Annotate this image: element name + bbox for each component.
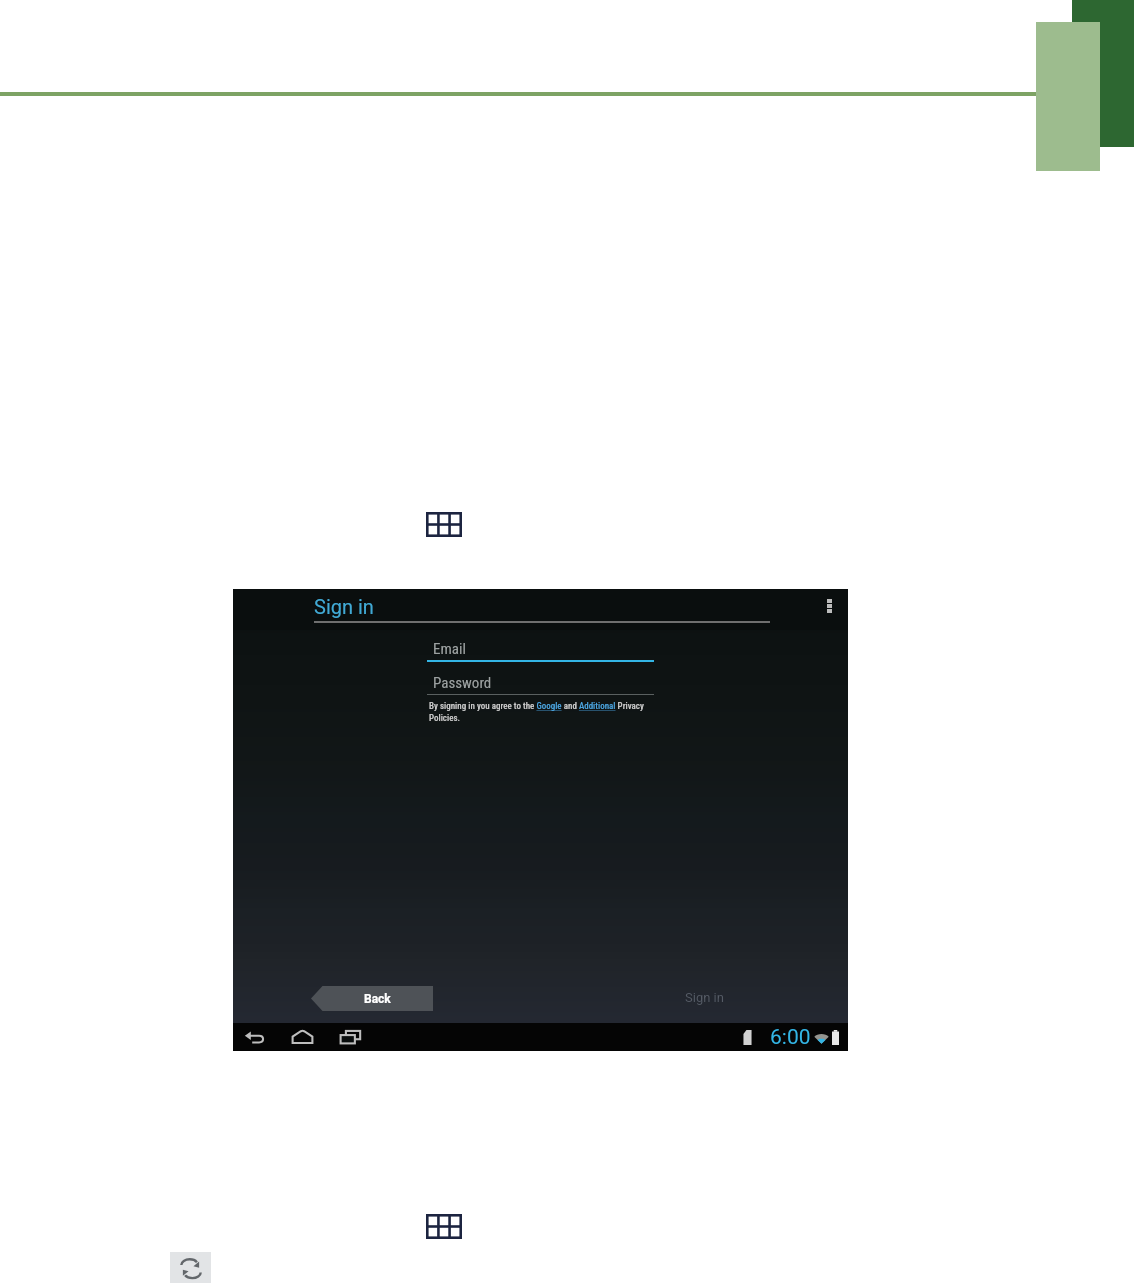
button[interactable]: Recent apps — [339, 1029, 362, 1045]
button[interactable]: Grid view — [426, 1214, 462, 1239]
staticText: Sign in — [314, 595, 374, 618]
staticText: Password — [433, 674, 492, 692]
button[interactable]: Back — [311, 986, 433, 1011]
button[interactable]: More options — [821, 591, 838, 621]
staticText: Email — [433, 640, 466, 658]
button[interactable]: Home — [291, 1029, 314, 1045]
button[interactable]: Grid view — [426, 512, 462, 537]
button[interactable]: Back — [243, 1029, 266, 1045]
staticText: 6:00 — [770, 1025, 811, 1050]
button[interactable]: Sign in — [671, 982, 738, 1013]
staticText: Back — [364, 992, 391, 1006]
staticText: Sign in — [685, 990, 724, 1005]
staticText: By signing in you agree to the Google an… — [429, 701, 656, 723]
button[interactable]: Refresh — [170, 1252, 211, 1283]
